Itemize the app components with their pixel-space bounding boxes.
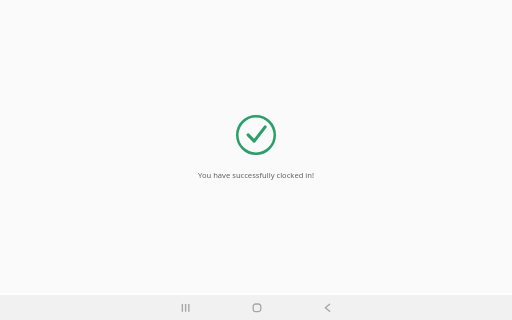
staticText: You have successfully clocked in!: [0, 170, 512, 180]
button[interactable]: Home: [240, 295, 273, 320]
button[interactable]: Recent apps: [169, 295, 202, 320]
button[interactable]: Back: [310, 295, 343, 320]
